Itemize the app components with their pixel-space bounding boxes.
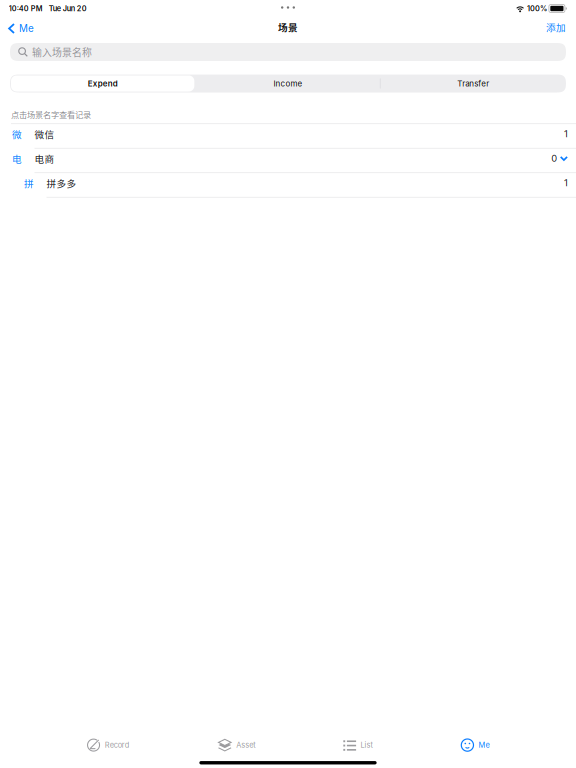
button[interactable]: List (343, 738, 373, 752)
staticText: Transfer (457, 79, 489, 88)
button[interactable]: 电 (0, 149, 576, 173)
staticText: Record (105, 741, 130, 750)
staticText: 场景 (278, 20, 298, 34)
button[interactable]: Record (87, 738, 130, 752)
staticText: 微 (12, 127, 22, 141)
staticText: 1 (564, 177, 568, 189)
staticText: 10:40 PM Tue Jun 20 (9, 4, 87, 13)
button[interactable]: Me (0, 15, 41, 42)
staticText: 电 (12, 151, 22, 165)
staticText: 点击场景名字查看记录 (11, 108, 91, 120)
button[interactable]: Asset (218, 738, 255, 752)
button[interactable]: Me (461, 738, 490, 752)
staticText: Me (479, 741, 490, 750)
staticText: 0 (551, 153, 557, 164)
button[interactable]: 添加 (536, 15, 576, 42)
staticText: 拼多多 (46, 176, 76, 190)
staticText: Asset (236, 741, 255, 750)
staticText: Me (19, 22, 34, 34)
staticText: 电商 (34, 151, 54, 165)
button[interactable]: 拼 (0, 173, 576, 198)
button[interactable]: Expend (10, 74, 195, 92)
staticText: 1 (564, 128, 568, 140)
staticText: Expend (88, 79, 118, 88)
staticText: Income (273, 79, 302, 88)
button[interactable]: Transfer (381, 74, 566, 92)
staticText: 添加 (546, 20, 566, 34)
staticText: 100% (525, 4, 549, 13)
staticText: 微信 (34, 127, 54, 141)
staticText: 输入场景名称 (32, 45, 92, 59)
staticText: List (361, 741, 373, 750)
staticText: 拼 (24, 176, 34, 190)
button[interactable]: 微 (0, 124, 576, 149)
button[interactable]: Income (195, 74, 381, 92)
